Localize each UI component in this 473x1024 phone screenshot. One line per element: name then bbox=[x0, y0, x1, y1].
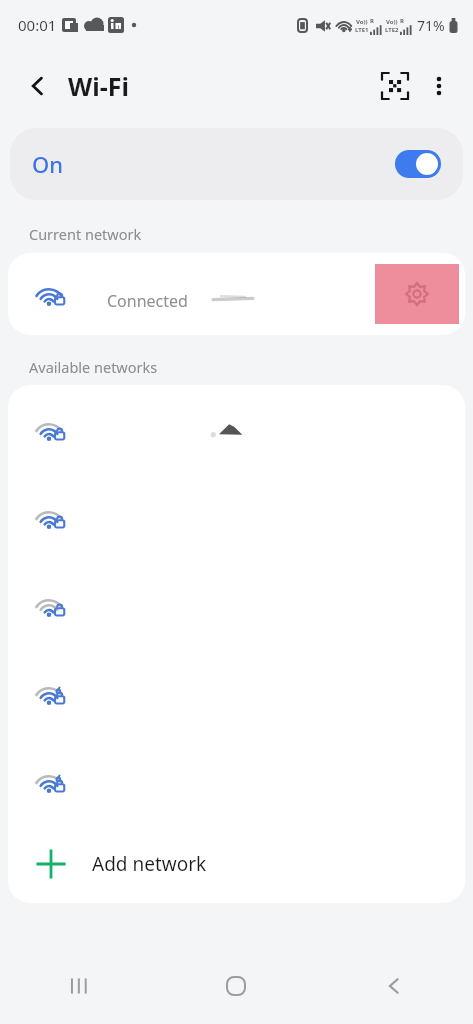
button[interactable]: Network settings bbox=[375, 264, 459, 324]
button[interactable]: Back bbox=[14, 62, 62, 110]
button[interactable]: Recents bbox=[0, 948, 157, 1024]
button[interactable] bbox=[8, 649, 465, 737]
button[interactable]: Wi-Fi toggle bbox=[395, 150, 441, 178]
button[interactable]: Add network bbox=[8, 825, 465, 903]
staticText: LTE1 bbox=[355, 26, 369, 34]
staticText: 71% bbox=[417, 16, 445, 35]
staticText: Wi-Fi bbox=[68, 69, 129, 103]
button[interactable] bbox=[8, 473, 465, 561]
staticText: Connected bbox=[107, 290, 188, 312]
staticText: R bbox=[370, 17, 374, 25]
staticText: On bbox=[32, 149, 64, 179]
button[interactable]: Home bbox=[157, 948, 315, 1024]
button[interactable]: On bbox=[10, 128, 463, 200]
staticText: Vo)) bbox=[386, 18, 398, 26]
staticText: Current network bbox=[29, 224, 142, 244]
button[interactable]: More options bbox=[417, 64, 461, 108]
button[interactable]: Back bbox=[315, 948, 473, 1024]
staticText: Add network bbox=[92, 851, 207, 877]
staticText: R bbox=[400, 17, 404, 25]
button[interactable]: Connected bbox=[8, 253, 465, 335]
button[interactable]: Scan QR code bbox=[373, 64, 417, 108]
staticText: Available networks bbox=[29, 357, 158, 377]
button[interactable] bbox=[8, 385, 465, 473]
staticText: 00:01 bbox=[18, 15, 57, 35]
staticText: LTE2 bbox=[385, 26, 399, 34]
button[interactable] bbox=[8, 561, 465, 649]
staticText: Vo)) bbox=[356, 18, 368, 26]
button[interactable] bbox=[8, 737, 465, 825]
